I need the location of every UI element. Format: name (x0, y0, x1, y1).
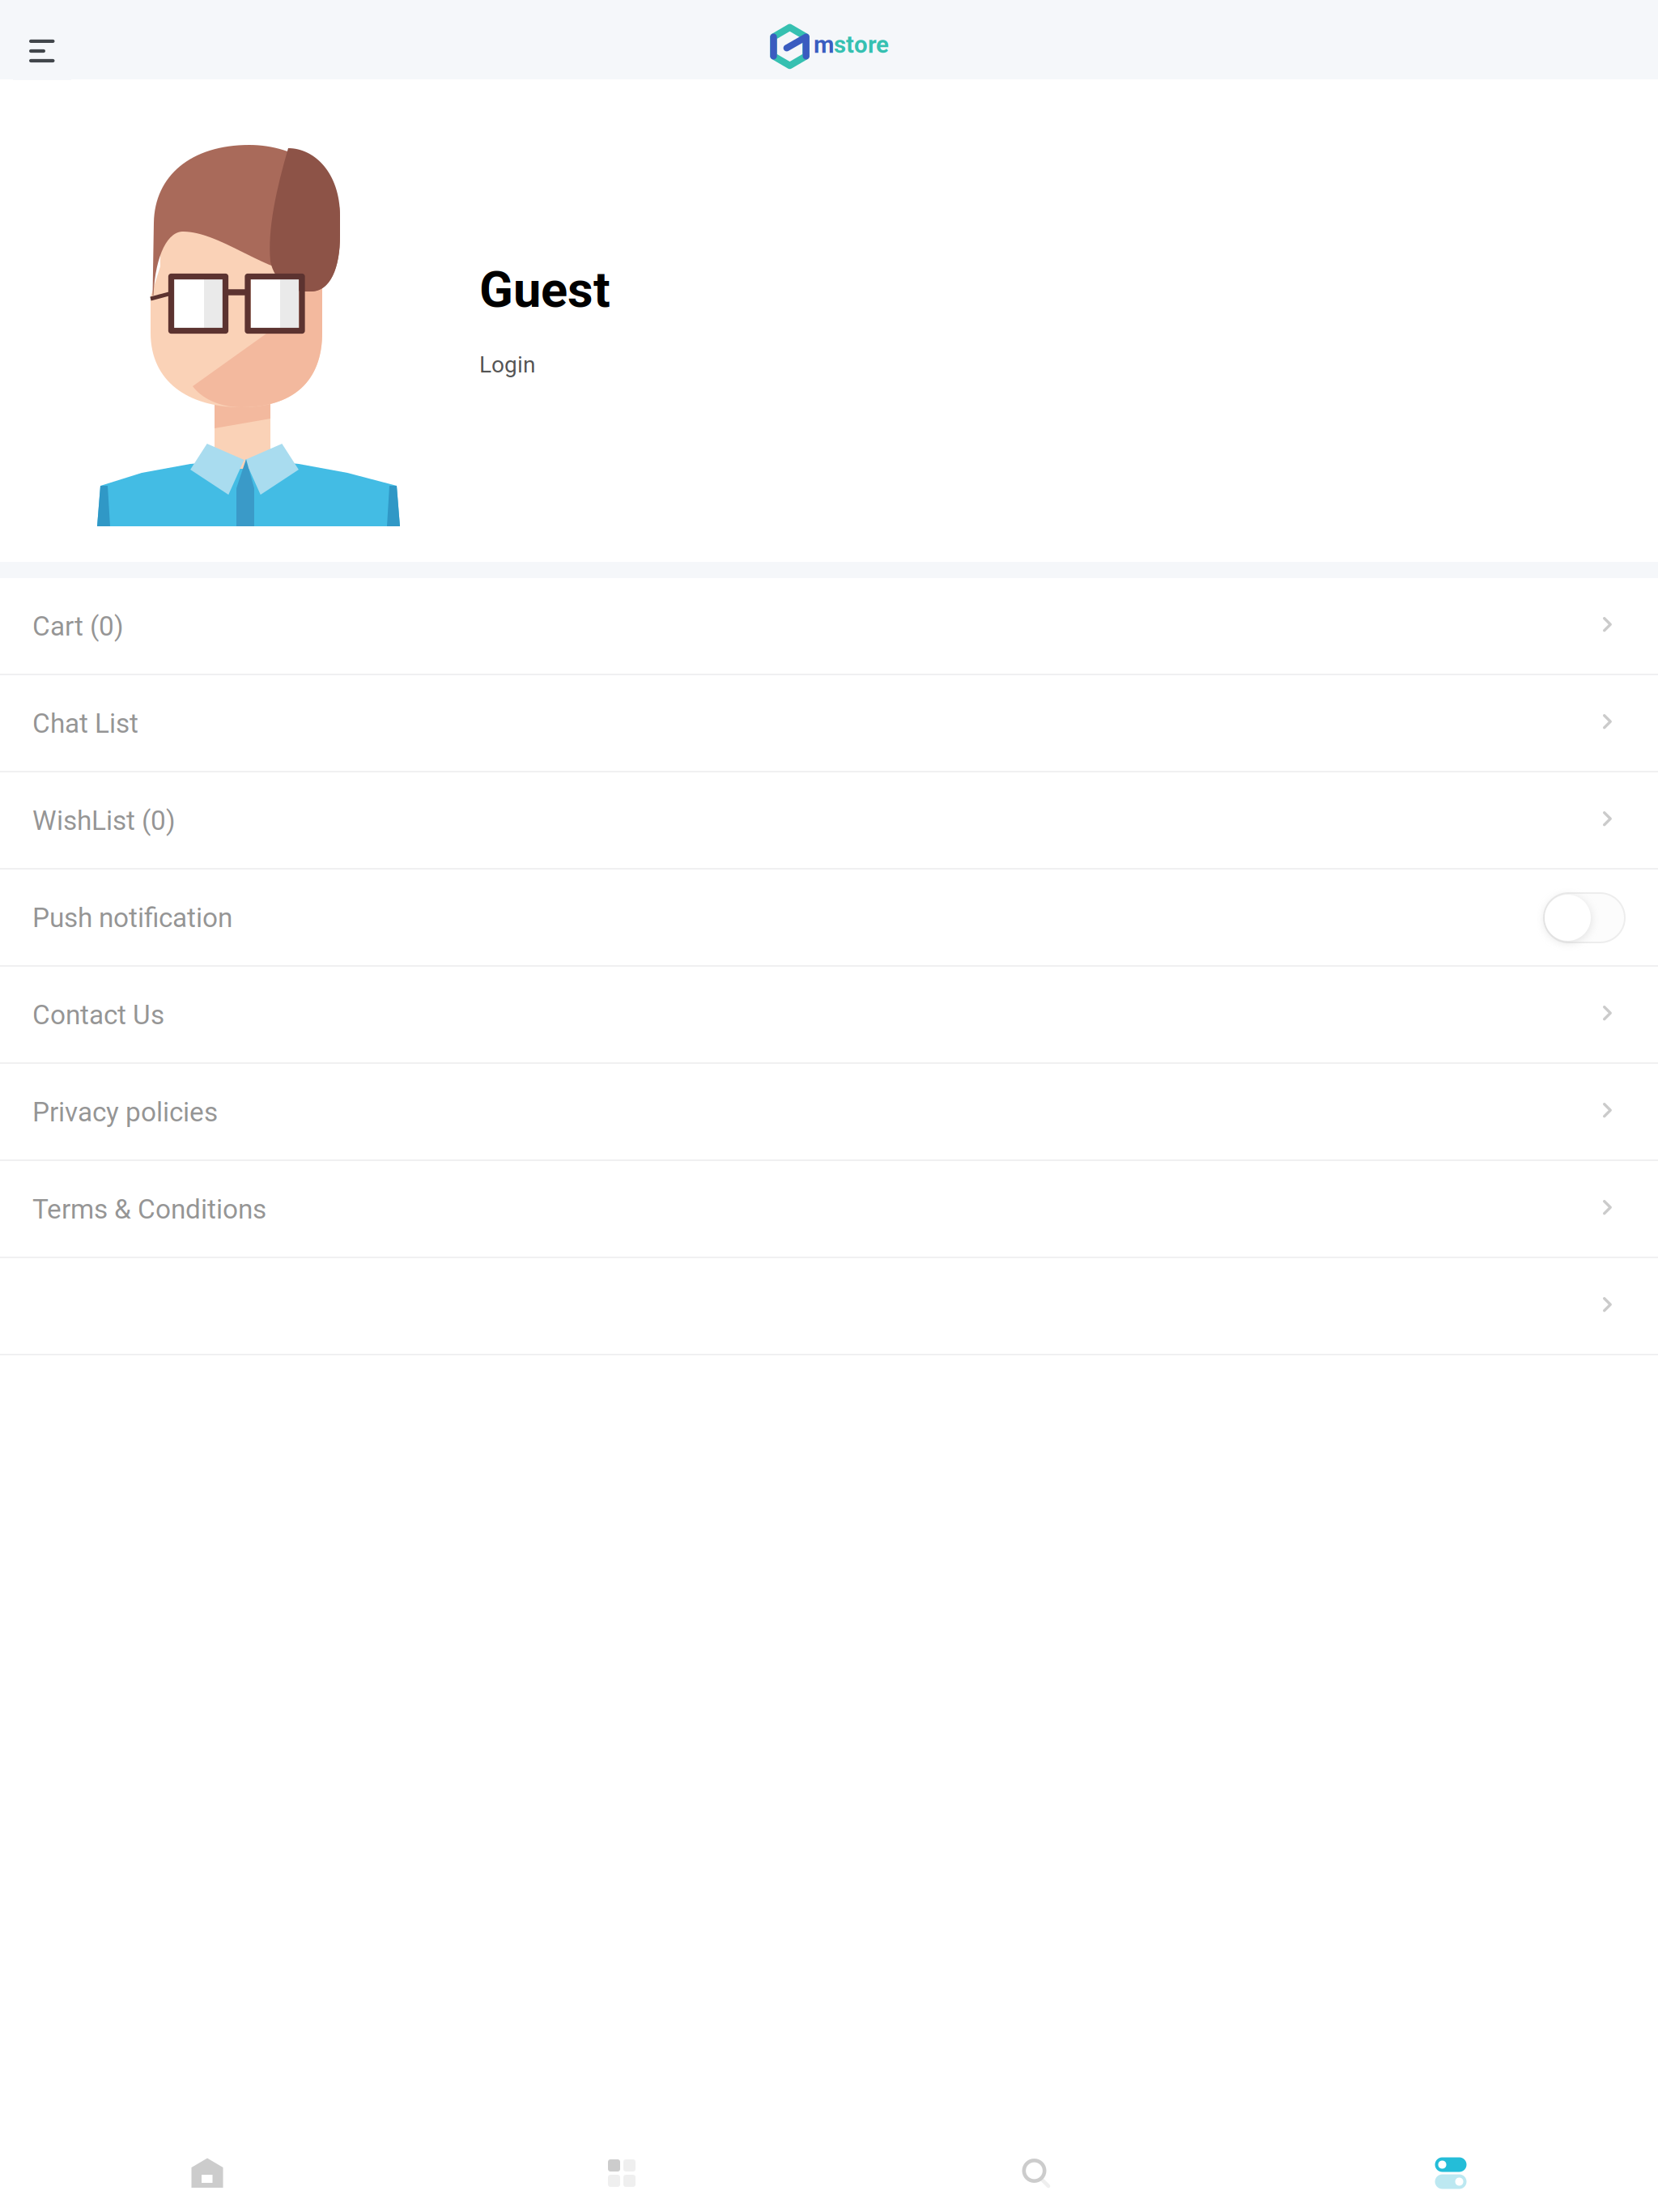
staticText: Login (479, 351, 535, 378)
button[interactable]: Settings (1243, 2128, 1658, 2212)
staticText: store (834, 31, 889, 59)
staticText: Privacy policies (32, 1096, 218, 1128)
button[interactable]: Home (0, 2128, 414, 2212)
button[interactable]: Login (479, 340, 609, 389)
button[interactable]: Privacy policies (0, 1064, 1658, 1161)
button[interactable]: Push notification (0, 870, 1658, 967)
button[interactable]: Chat List (0, 675, 1658, 772)
button[interactable]: Categories (414, 2128, 829, 2212)
button[interactable]: Search (829, 2128, 1243, 2212)
button[interactable]: Menu (13, 22, 71, 80)
staticText: Contact Us (32, 999, 164, 1031)
button[interactable]: WishList (0) (0, 772, 1658, 870)
staticText: Push notification (32, 902, 232, 934)
staticText: Guest (479, 261, 610, 319)
staticText: Terms & Conditions (32, 1193, 266, 1225)
button[interactable]: Terms & Conditions (0, 1161, 1658, 1258)
staticText: Cart (0) (32, 610, 124, 642)
staticText: m (814, 31, 834, 59)
button[interactable]: Contact Us (0, 967, 1658, 1064)
button[interactable]: Cart (0) (0, 578, 1658, 675)
staticText: Chat List (32, 708, 138, 739)
staticText: WishList (0) (32, 805, 176, 836)
